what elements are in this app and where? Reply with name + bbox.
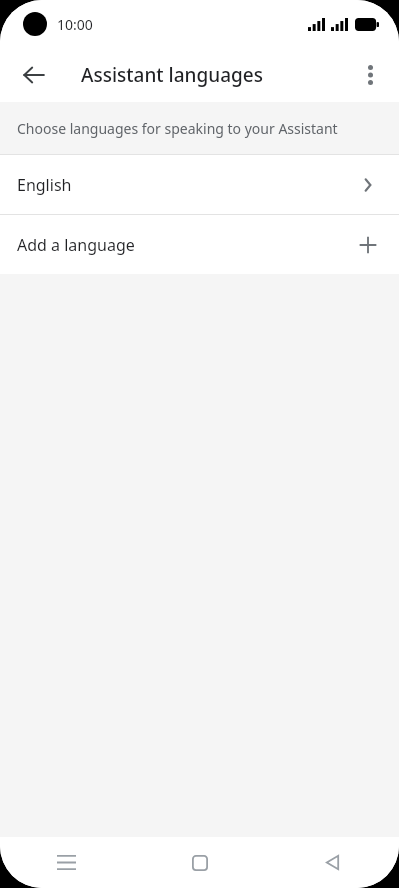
button[interactable]: Recent apps	[0, 837, 133, 888]
staticText: Assistant languages	[81, 62, 263, 88]
button[interactable]: Back	[266, 837, 399, 888]
button[interactable]: Add a language	[0, 215, 399, 274]
button[interactable]: Back	[10, 51, 58, 99]
staticText: Add a language	[17, 234, 357, 256]
button[interactable]: Home	[133, 837, 266, 888]
button[interactable]: Open English language options	[0, 155, 399, 214]
button[interactable]: More options	[346, 51, 394, 99]
staticText: 10:00	[57, 15, 93, 34]
staticText: English	[17, 174, 357, 196]
staticText: Choose languages for speaking to your As…	[17, 119, 338, 138]
